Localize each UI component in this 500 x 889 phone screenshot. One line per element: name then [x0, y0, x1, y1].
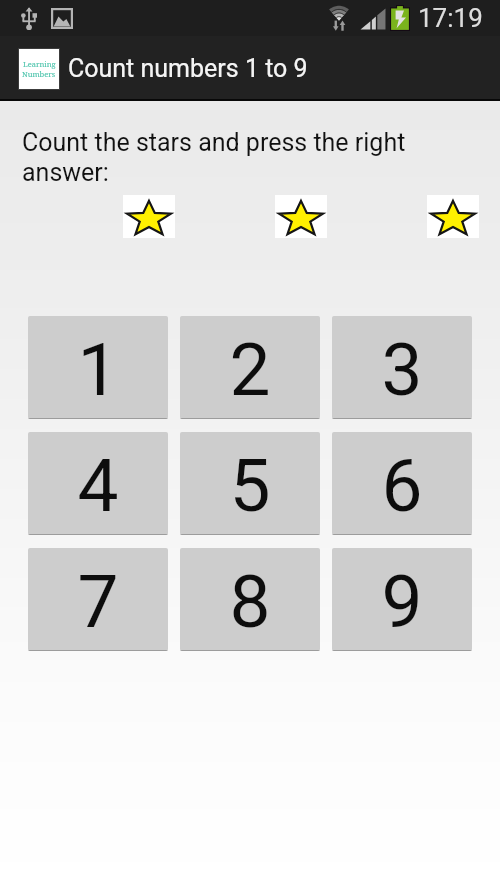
staticText: 6: [381, 443, 423, 529]
staticText: 3: [381, 327, 423, 413]
staticText: Count numbers 1 to 9: [68, 54, 308, 83]
button[interactable]: 7: [28, 548, 168, 651]
staticText: Learning: [23, 59, 56, 69]
staticText: Count the stars and press the right answ…: [22, 128, 440, 187]
staticText: 8: [229, 559, 271, 645]
button[interactable]: 6: [332, 432, 472, 535]
button[interactable]: 8: [180, 548, 320, 651]
button[interactable]: 4: [28, 432, 168, 535]
button[interactable]: Learning Numbers, navigate up: [18, 48, 60, 90]
staticText: Numbers: [22, 69, 56, 79]
button[interactable]: 9: [332, 548, 472, 651]
staticText: 9: [381, 559, 423, 645]
staticText: 4: [77, 443, 119, 529]
staticText: 5: [229, 443, 271, 529]
button[interactable]: 2: [180, 316, 320, 419]
button[interactable]: 5: [180, 432, 320, 535]
staticText: 7: [77, 559, 119, 645]
staticText: 2: [229, 327, 271, 413]
button[interactable]: 3: [332, 316, 472, 419]
staticText: 17:19: [418, 3, 483, 33]
button[interactable]: 1: [28, 316, 168, 419]
staticText: 1: [77, 327, 119, 413]
